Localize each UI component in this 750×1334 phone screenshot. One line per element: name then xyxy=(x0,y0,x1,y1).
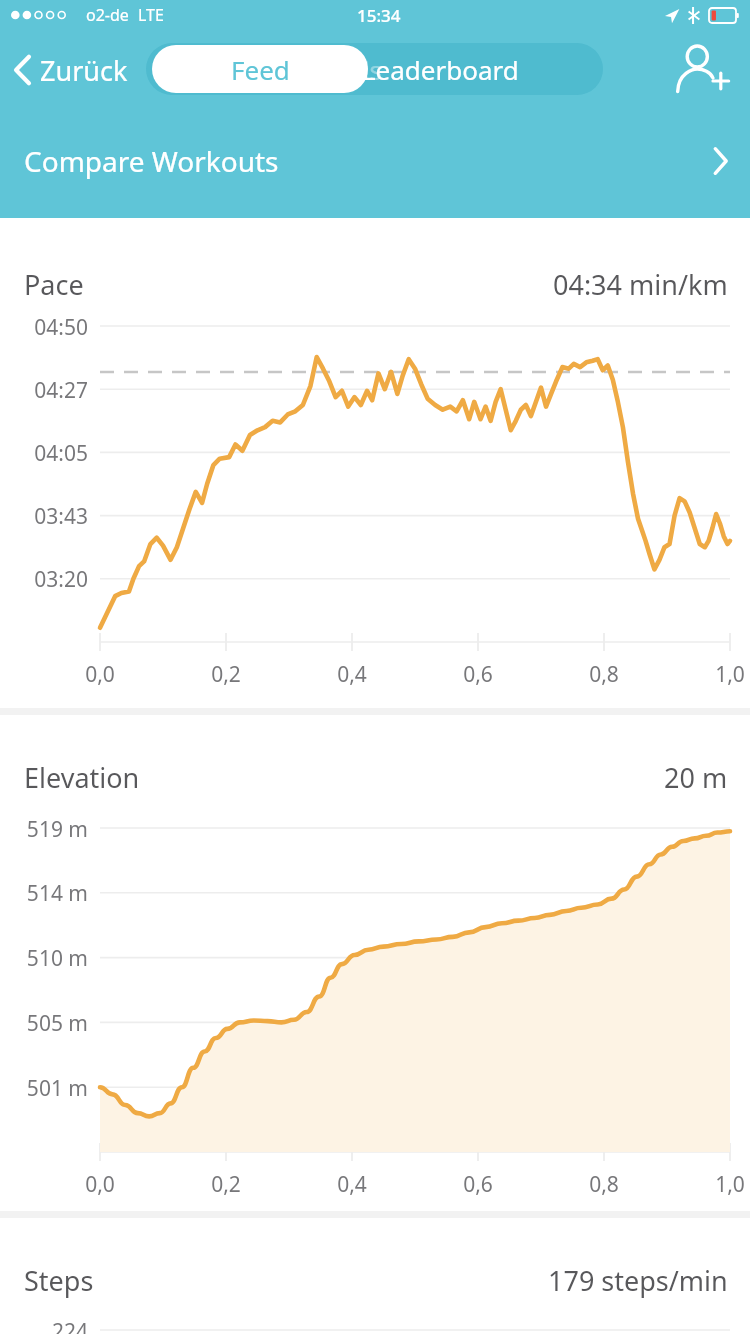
staticText: Compare Workouts xyxy=(24,142,279,180)
staticText: 0,2 xyxy=(191,660,261,689)
button[interactable]: Compare Workouts xyxy=(0,118,750,204)
button[interactable]: Zurück xyxy=(0,42,138,98)
staticText: 0,8 xyxy=(569,660,639,689)
staticText: 179 steps/min xyxy=(548,1262,728,1299)
staticText: 0,4 xyxy=(317,1170,387,1199)
staticText: LTE xyxy=(138,4,164,26)
staticText: 224 xyxy=(10,1317,88,1334)
staticText: 0,0 xyxy=(65,1170,135,1199)
staticText: 15:34 xyxy=(357,4,401,27)
staticText: 20 m xyxy=(664,759,728,796)
staticText: 04:05 xyxy=(10,439,88,468)
staticText: 510 m xyxy=(10,944,88,973)
staticText: 04:27 xyxy=(10,376,88,405)
staticText: 03:20 xyxy=(10,565,88,594)
staticText: 514 m xyxy=(10,879,88,908)
staticText: 505 m xyxy=(10,1009,88,1038)
staticText: 03:43 xyxy=(10,502,88,531)
staticText: 0,8 xyxy=(569,1170,639,1199)
button[interactable]: Add friend xyxy=(672,41,736,99)
staticText: Elevation xyxy=(24,759,140,796)
staticText: 501 m xyxy=(10,1074,88,1103)
staticText: 0,6 xyxy=(443,660,513,689)
staticText: Steps xyxy=(24,1262,94,1299)
staticText: 0,6 xyxy=(443,1170,513,1199)
staticText: Pace xyxy=(24,266,84,303)
staticText: 04:50 xyxy=(10,313,88,342)
staticText: Zurück xyxy=(40,52,128,89)
staticText: Feed xyxy=(231,52,290,87)
staticText: 04:34 min/km xyxy=(553,266,728,303)
staticText: o2-de xyxy=(86,4,129,26)
staticText: 1,0 xyxy=(695,660,750,689)
staticText: 1,0 xyxy=(695,1170,750,1199)
button[interactable]: Leaderboard xyxy=(362,52,519,87)
staticText: Analysis xyxy=(283,52,382,87)
staticText: 0,4 xyxy=(317,660,387,689)
staticText: 519 m xyxy=(10,815,88,844)
staticText: 0,2 xyxy=(191,1170,261,1199)
button[interactable]: Feed xyxy=(152,45,368,93)
staticText: 0,0 xyxy=(65,660,135,689)
